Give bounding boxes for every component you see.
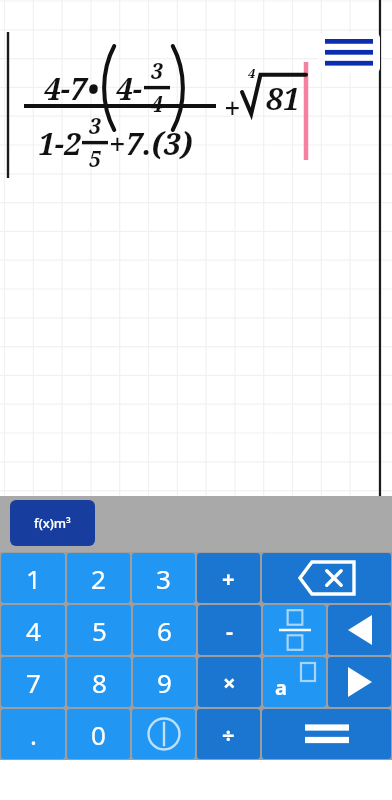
staticText: 3 (156, 561, 171, 596)
button[interactable]: Move left (328, 605, 391, 655)
staticText: . (30, 717, 37, 752)
button[interactable]: Move right (328, 657, 391, 707)
button[interactable]: 0 (67, 709, 130, 759)
button[interactable]: ÷ (197, 709, 260, 759)
staticText: f(x)m³ (34, 514, 71, 532)
staticText: 9 (157, 665, 172, 700)
button[interactable]: 4 (1, 605, 65, 655)
button[interactable]: Power (263, 657, 326, 707)
staticText: +7.(3) (109, 123, 193, 164)
staticText: 0 (91, 717, 106, 752)
button[interactable]: . (1, 709, 65, 759)
button[interactable]: 3 (132, 553, 195, 603)
button[interactable]: Fraction (263, 605, 326, 655)
button[interactable]: 9 (133, 657, 196, 707)
staticText: × (223, 667, 236, 697)
staticText: + (222, 563, 235, 593)
button[interactable]: Equals (262, 709, 391, 759)
staticText: 4 (26, 613, 41, 648)
button[interactable]: Menu (318, 33, 380, 73)
staticText: 1-2 (38, 123, 81, 164)
button[interactable]: 5 (67, 605, 131, 655)
button[interactable]: 7 (1, 657, 65, 707)
button[interactable]: 8 (67, 657, 131, 707)
staticText: 4 (248, 64, 256, 82)
staticText: 7 (26, 665, 41, 700)
staticText: a (275, 674, 287, 701)
button[interactable]: Backspace (262, 553, 391, 603)
staticText: 81 (266, 78, 300, 119)
button[interactable]: 1 (1, 553, 65, 603)
button[interactable]: f(x)m³ (10, 500, 95, 546)
staticText: 4-7• (44, 68, 99, 109)
staticText: 8 (92, 665, 107, 700)
button[interactable]: × (198, 657, 261, 707)
button[interactable]: + (197, 553, 260, 603)
staticText: 5 (92, 613, 107, 648)
staticText: - (226, 615, 234, 645)
button[interactable]: 2 (67, 553, 130, 603)
staticText: 3 (89, 112, 101, 141)
button[interactable]: Parentheses (132, 709, 195, 759)
button[interactable]: - (198, 605, 261, 655)
staticText: 6 (157, 613, 172, 648)
staticText: 1 (26, 561, 41, 596)
staticText: 2 (91, 561, 106, 596)
staticText: ÷ (222, 719, 235, 749)
staticText: 3 (151, 57, 163, 86)
button[interactable]: 6 (133, 605, 196, 655)
staticText: + (224, 87, 241, 128)
staticText: 5 (89, 145, 101, 174)
staticText: 4 (151, 90, 163, 119)
staticText: 4- (116, 68, 143, 109)
